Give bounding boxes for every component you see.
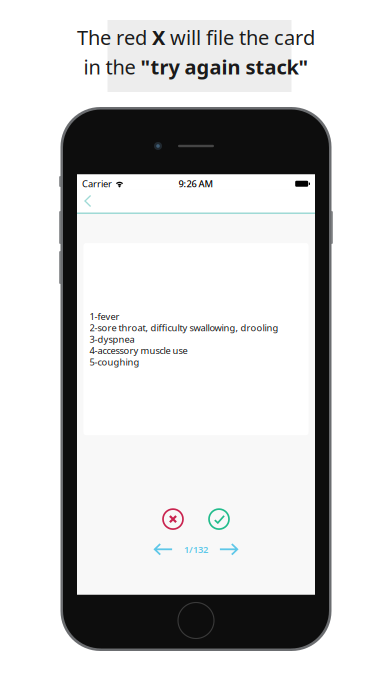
staticText: 1/132 [184, 543, 208, 555]
staticText: 1-fever [89, 310, 119, 322]
staticText: The red X will file the card [77, 24, 315, 50]
staticText: 3-dyspnea [89, 333, 134, 345]
staticText: 9:26 AM [178, 178, 213, 190]
button[interactable]: Mark correct [208, 508, 230, 530]
staticText: 5-coughing [89, 356, 139, 368]
staticText: 4-accessory muscle use [89, 344, 187, 357]
button[interactable]: Previous card [154, 543, 173, 555]
button[interactable]: Next card [219, 543, 238, 555]
staticText: 2-sore throat, difficulty swallowing, dr… [89, 321, 278, 334]
button[interactable]: Mark wrong [162, 508, 184, 530]
staticText: in the "try again stack" [83, 53, 308, 80]
button[interactable]: Back [77, 190, 104, 211]
staticText: Carrier [82, 178, 112, 190]
